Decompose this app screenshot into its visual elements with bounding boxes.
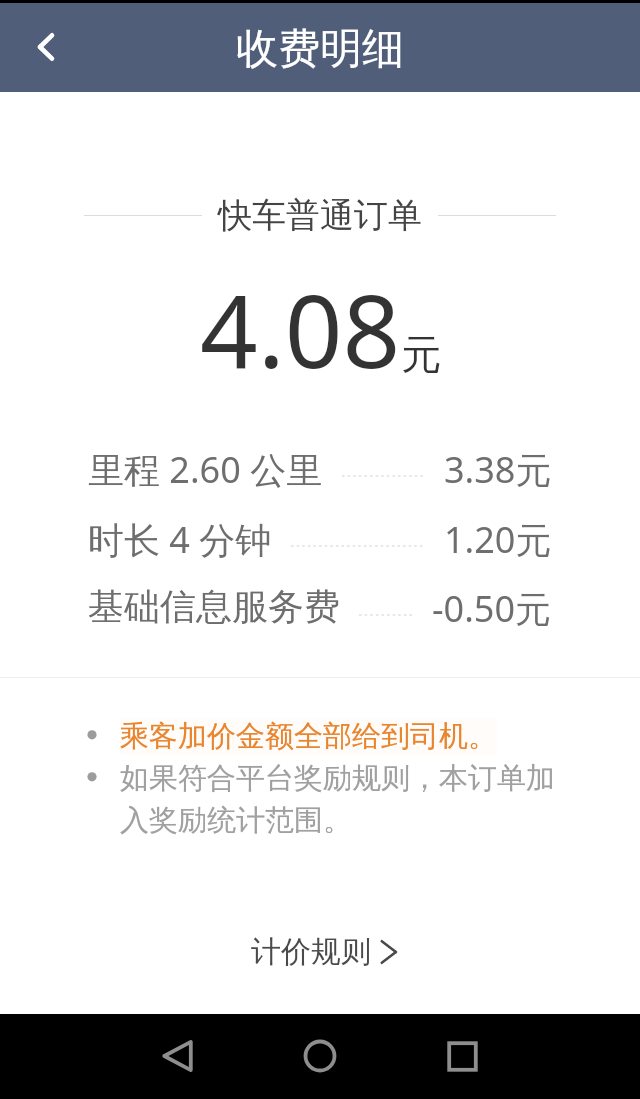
staticText: 1.20元: [444, 515, 552, 559]
staticText: 如果符合平台奖励规则，本订单加入奖励统计范围。: [120, 760, 556, 839]
staticText: 快车普通订单: [218, 194, 422, 237]
staticText: 基础信息服务费: [88, 584, 340, 628]
staticText: -0.50元: [432, 584, 552, 628]
button[interactable]: Back: [0, 5, 86, 91]
button[interactable]: 计价规则: [251, 922, 404, 982]
button[interactable]: Recents: [432, 1026, 492, 1086]
staticText: 4.08: [200, 260, 401, 398]
staticText: 时长 4 分钟: [88, 515, 272, 559]
staticText: 计价规则: [251, 933, 371, 971]
staticText: 元: [401, 329, 441, 379]
staticText: 里程 2.60 公里: [88, 445, 323, 489]
staticText: 收费明细: [236, 23, 404, 76]
button[interactable]: Home: [290, 1026, 350, 1086]
button[interactable]: Back: [148, 1026, 208, 1086]
staticText: 3.38元: [444, 445, 552, 489]
staticText: 乘客加价金额全部给到司机。: [120, 718, 497, 755]
